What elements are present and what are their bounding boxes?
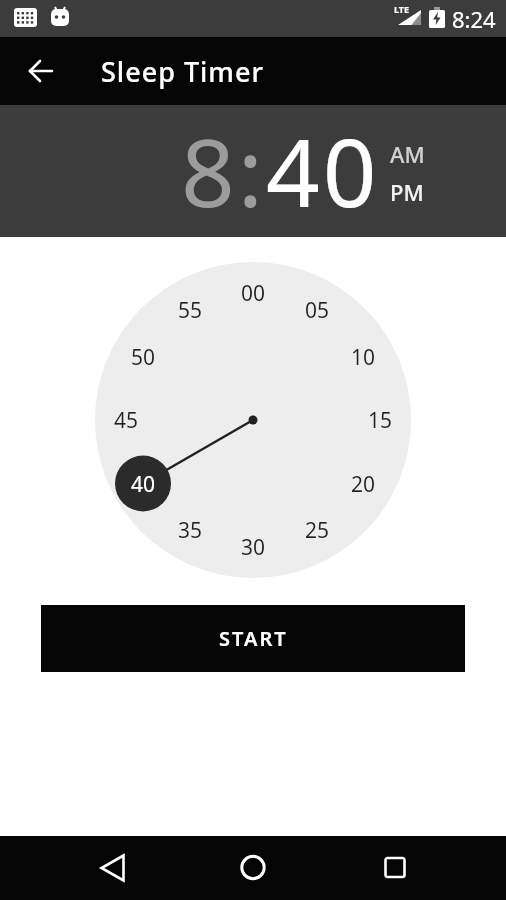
staticText: 30 <box>241 533 266 562</box>
button[interactable]: 40 <box>115 456 171 512</box>
button[interactable]: 8: <box>181 107 266 235</box>
button[interactable]: 05 <box>289 282 345 338</box>
staticText: START <box>219 625 288 652</box>
button[interactable] <box>371 844 419 892</box>
staticText: 05 <box>305 296 330 325</box>
staticText: 00 <box>241 279 266 308</box>
button[interactable]: 00 <box>225 265 281 321</box>
staticText: 15 <box>368 406 393 435</box>
button[interactable]: 45 <box>98 392 154 448</box>
staticText: 45 <box>114 406 139 435</box>
staticText: 55 <box>178 296 203 325</box>
button[interactable]: 10 <box>335 329 391 385</box>
button[interactable]: 30 <box>225 519 281 575</box>
button[interactable] <box>89 844 137 892</box>
button[interactable]: START <box>41 605 465 672</box>
button[interactable]: 40 <box>266 107 380 235</box>
button[interactable]: 55 <box>162 282 218 338</box>
button[interactable]: AM <box>390 139 425 169</box>
staticText: 50 <box>131 343 156 372</box>
button[interactable]: 25 <box>289 502 345 558</box>
button[interactable]: PM <box>390 177 424 207</box>
staticText: 40 <box>131 470 156 499</box>
button[interactable] <box>229 844 277 892</box>
button[interactable]: 35 <box>162 502 218 558</box>
button[interactable]: 15 <box>352 392 408 448</box>
staticText: 8:24 <box>452 4 496 34</box>
button[interactable] <box>17 47 65 95</box>
staticText: 20 <box>351 470 376 499</box>
staticText: 35 <box>178 516 203 545</box>
button[interactable]: 20 <box>335 456 391 512</box>
button[interactable]: 50 <box>115 329 171 385</box>
staticText: LTE <box>394 3 410 15</box>
staticText: 25 <box>305 516 330 545</box>
staticText: Sleep Timer <box>101 53 264 90</box>
staticText: 10 <box>351 343 376 372</box>
